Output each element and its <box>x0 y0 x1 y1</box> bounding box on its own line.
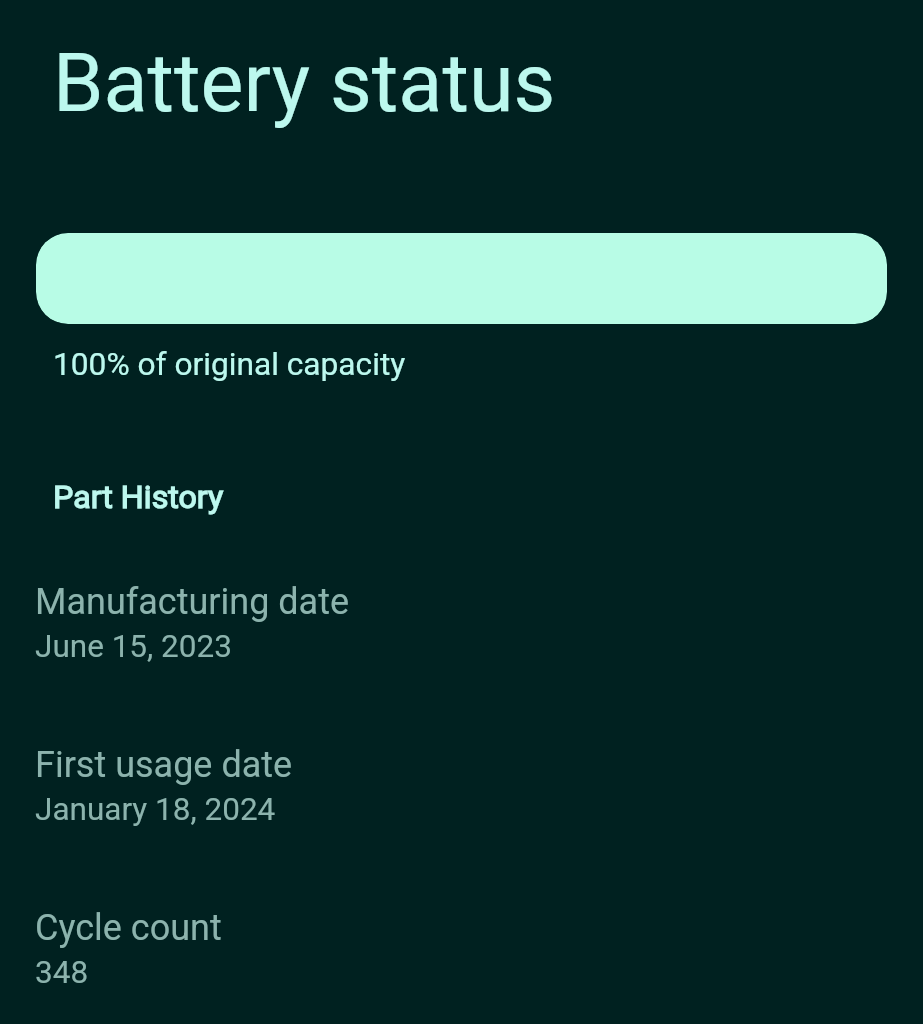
button[interactable]: Cycle count <box>35 907 923 991</box>
staticText: Battery status <box>53 36 556 131</box>
staticText: 100% of original capacity <box>53 346 406 383</box>
staticText: Part History <box>53 478 224 516</box>
staticText: June 15, 2023 <box>35 628 232 665</box>
button[interactable]: Manufacturing date <box>35 581 923 665</box>
staticText: Cycle count <box>35 907 222 949</box>
staticText: Manufacturing date <box>35 581 350 623</box>
button[interactable]: Battery capacity 100 percent <box>36 233 887 324</box>
staticText: 348 <box>35 954 89 991</box>
button[interactable]: First usage date <box>35 744 923 828</box>
staticText: January 18, 2024 <box>35 791 276 828</box>
staticText: First usage date <box>35 744 293 786</box>
